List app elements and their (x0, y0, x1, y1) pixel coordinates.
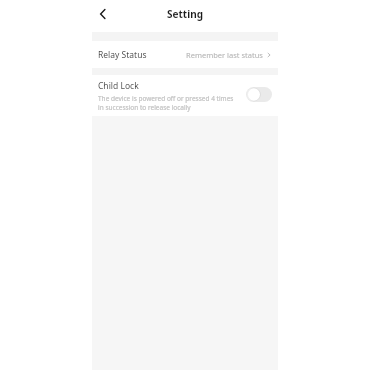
button[interactable]: Child Lock toggle, off (246, 87, 272, 102)
button[interactable]: Relay Status (92, 41, 278, 68)
staticText: Remember last status (186, 50, 263, 60)
staticText: in succession to release locally (98, 103, 191, 112)
staticText: Child Lock (98, 80, 139, 92)
staticText: Setting (167, 7, 203, 21)
button[interactable]: Child Lock (92, 75, 278, 116)
staticText: Relay Status (98, 49, 147, 61)
staticText: The device is powered off or pressed 4 t… (98, 94, 234, 103)
button[interactable]: Back (92, 3, 114, 25)
